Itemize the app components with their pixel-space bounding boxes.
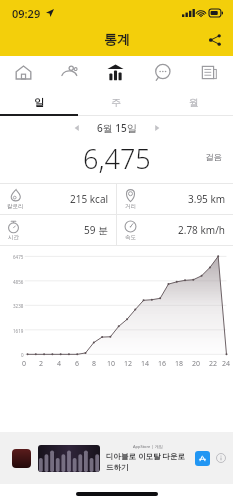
staticText: 24 — [222, 359, 231, 369]
staticText: AppStore | 게임 — [133, 444, 163, 449]
staticText: 0 — [21, 352, 24, 358]
staticText: 2.78 km/h — [178, 223, 226, 237]
staticText: 6,475 — [83, 140, 151, 174]
staticText: 시간 — [8, 234, 19, 241]
button[interactable]: AppStore | 게임 — [4, 443, 229, 473]
button[interactable]: 일 — [0, 89, 77, 116]
button[interactable]: 거리 — [117, 184, 233, 214]
staticText: 월 — [189, 96, 199, 109]
button[interactable]: Share — [202, 27, 228, 53]
staticText: 3.95 km — [188, 192, 226, 206]
button[interactable]: Friends — [46, 56, 92, 89]
button[interactable]: 시간 — [0, 215, 116, 245]
staticText: 4856 — [13, 279, 24, 285]
staticText: 거리 — [125, 203, 136, 210]
staticText: 디아블로 이모탈 다운로드하기 — [106, 451, 190, 472]
staticText: 2 — [39, 359, 44, 369]
staticText: 09:29 — [12, 6, 41, 21]
button[interactable]: 속도 — [117, 215, 233, 245]
staticText: 주 — [111, 96, 121, 109]
staticText: 4 — [57, 359, 62, 369]
button[interactable]: Ad info — [216, 453, 226, 463]
button[interactable]: Statistics — [92, 56, 139, 89]
staticText: 통계 — [104, 31, 130, 47]
button[interactable]: Chat — [139, 56, 186, 89]
staticText: 215 kcal — [70, 192, 109, 206]
staticText: 6월 15일 — [97, 121, 137, 135]
staticText: 일 — [34, 96, 44, 109]
staticText: 6475 — [13, 254, 24, 260]
staticText: 0 — [22, 359, 27, 369]
staticText: 속도 — [125, 234, 136, 241]
button[interactable]: News — [186, 56, 233, 89]
staticText: 6 — [75, 359, 80, 369]
staticText: 8 — [92, 359, 97, 369]
button[interactable]: 칼로리 — [0, 184, 116, 214]
staticText: 3238 — [13, 303, 24, 309]
staticText: 12 — [124, 359, 133, 369]
button[interactable]: Previous day — [68, 119, 86, 137]
staticText: 14 — [141, 359, 150, 369]
staticText: 22 — [209, 359, 218, 369]
staticText: 18 — [175, 359, 184, 369]
staticText: 16 — [158, 359, 167, 369]
staticText: 칼로리 — [7, 203, 24, 210]
button[interactable]: 월 — [155, 89, 233, 116]
staticText: 20 — [192, 359, 201, 369]
staticText: 59 분 — [84, 223, 109, 237]
staticText: 걸음 — [205, 152, 222, 163]
button[interactable]: Next day — [148, 119, 166, 137]
staticText: 10 — [107, 359, 116, 369]
button[interactable]: 주 — [77, 89, 155, 116]
staticText: 1619 — [13, 328, 24, 334]
button[interactable]: Home — [0, 56, 46, 89]
